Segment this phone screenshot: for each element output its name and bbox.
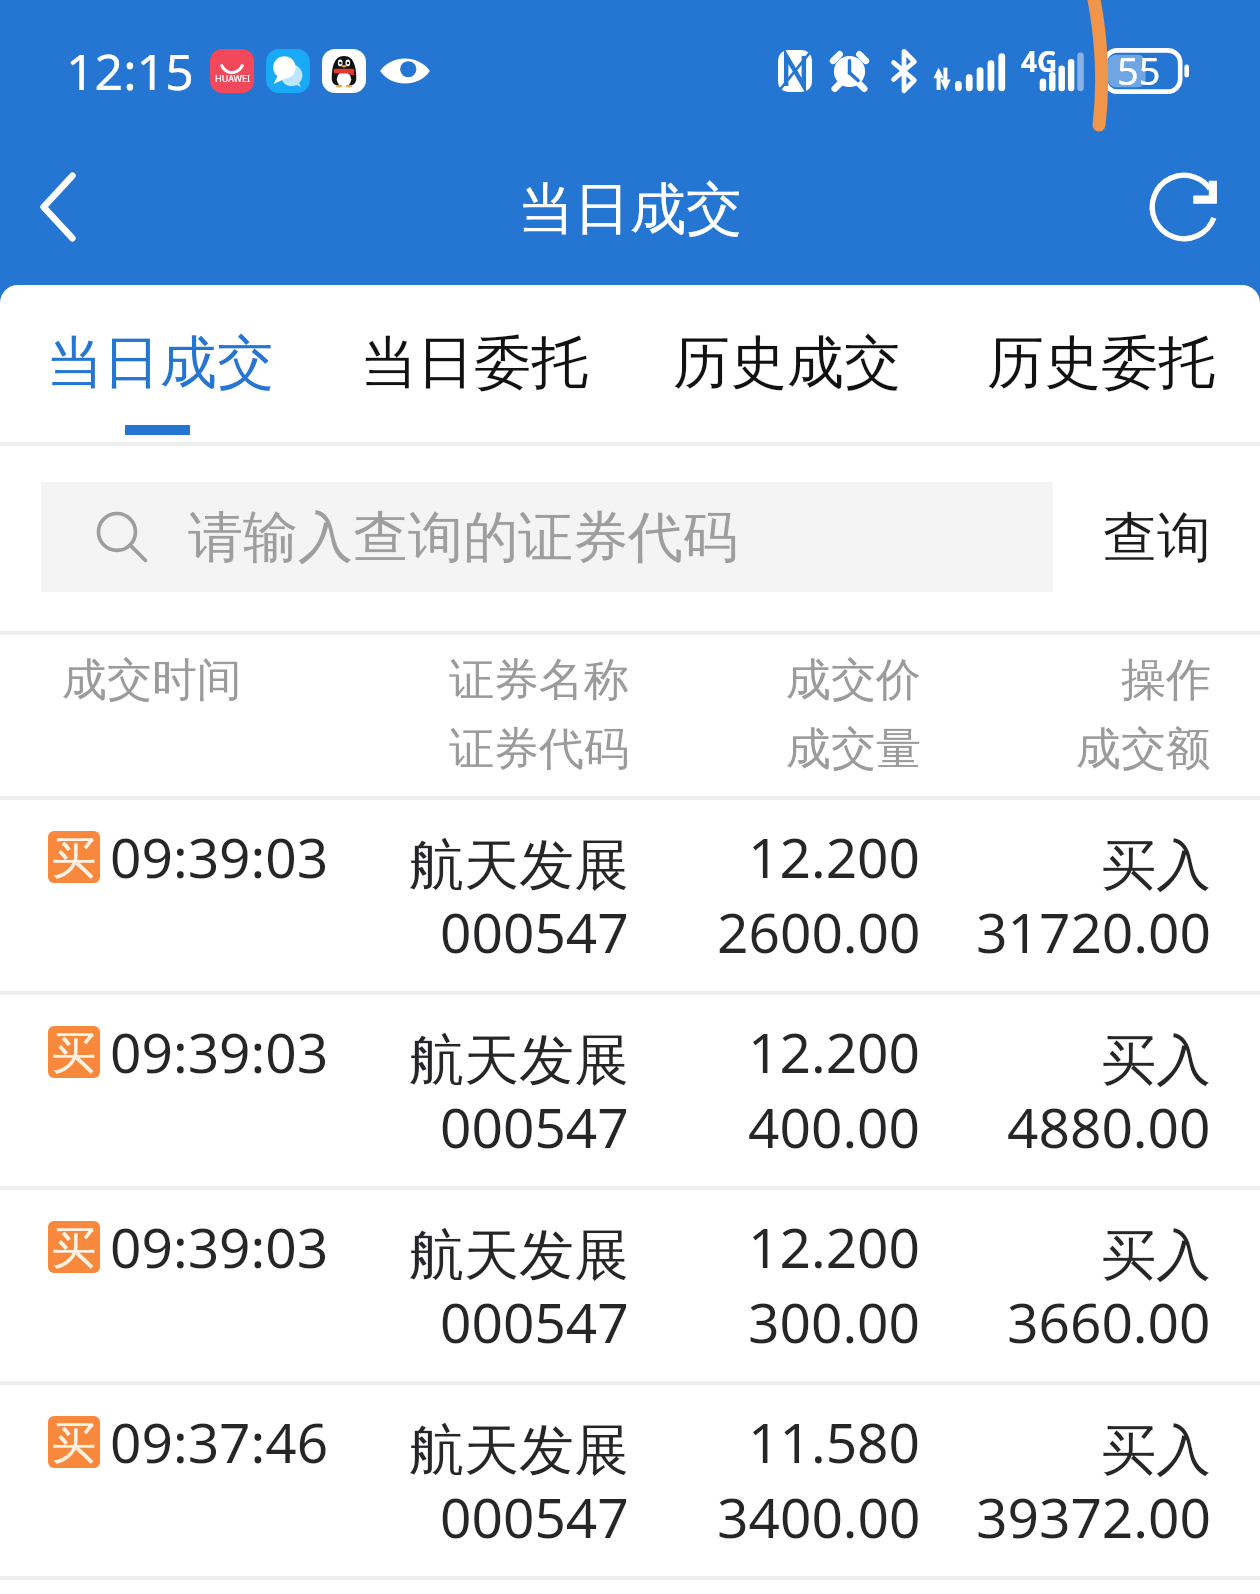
staticText: 12.200 [748,1014,921,1089]
staticText: 4880.00 [1007,1089,1211,1164]
staticText: 买入 [1101,1026,1211,1095]
staticText: 12.200 [748,819,921,894]
staticText: 2600.00 [717,894,921,969]
button[interactable]: 买 [0,1385,1260,1580]
staticText: 买入 [1101,831,1211,900]
staticText: 买 [52,831,96,883]
staticText: 航天发展 [409,1416,629,1485]
staticText: 买 [52,1416,96,1468]
staticText: 12:15 [66,37,194,105]
button[interactable]: Back [10,159,106,255]
button[interactable]: 买 [0,1190,1260,1385]
staticText: 55 [1117,44,1161,96]
staticText: 12.200 [748,1209,921,1284]
staticText: 3660.00 [1007,1284,1211,1359]
staticText: 3400.00 [717,1479,921,1554]
button[interactable]: 历史成交 [629,285,944,442]
staticText: 400.00 [748,1089,921,1164]
button[interactable]: 买 [0,800,1260,995]
staticText: 查询 [1103,504,1211,572]
staticText: 11.580 [748,1404,921,1479]
staticText: 09:39:03 [110,1014,329,1089]
staticText: 买 [52,1221,96,1273]
button[interactable]: 当日成交 [2,285,317,442]
staticText: 000547 [440,1479,629,1554]
staticText: 历史委托 [987,327,1215,399]
staticText: 成交价 [786,652,921,709]
staticText: 成交额 [1076,721,1211,778]
staticText: 成交量 [786,721,921,778]
staticText: 证券代码 [449,721,629,778]
button[interactable]: 请输入查询的证券代码 [94,482,1053,592]
staticText: 操作 [1121,652,1211,709]
staticText: 09:39:03 [110,819,329,894]
staticText: 请输入查询的证券代码 [188,503,738,572]
staticText: 航天发展 [409,1221,629,1290]
staticText: 09:37:46 [110,1404,329,1479]
staticText: 4G [1021,42,1058,80]
staticText: 当日成交 [46,327,274,399]
staticText: 39372.00 [976,1479,1211,1554]
staticText: 09:39:03 [110,1209,329,1284]
button[interactable]: 历史委托 [943,285,1258,442]
button[interactable]: Refresh [1136,159,1232,255]
staticText: 当日委托 [360,327,588,399]
staticText: 证券名称 [449,652,629,709]
staticText: 000547 [440,1089,629,1164]
button[interactable]: 买 [0,995,1260,1190]
staticText: 航天发展 [409,1026,629,1095]
button[interactable]: 当日委托 [316,285,631,442]
staticText: 300.00 [748,1284,921,1359]
staticText: 000547 [440,894,629,969]
staticText: 当日成交 [518,174,742,245]
staticText: 航天发展 [409,831,629,900]
staticText: 买入 [1101,1416,1211,1485]
staticText: 买入 [1101,1221,1211,1290]
staticText: 31720.00 [976,894,1211,969]
staticText: HUAWEI [215,72,250,84]
staticText: 买 [52,1026,96,1078]
staticText: 000547 [440,1284,629,1359]
button[interactable]: 查询 [1103,504,1211,572]
staticText: 历史成交 [673,327,901,399]
staticText: 成交时间 [62,652,242,709]
